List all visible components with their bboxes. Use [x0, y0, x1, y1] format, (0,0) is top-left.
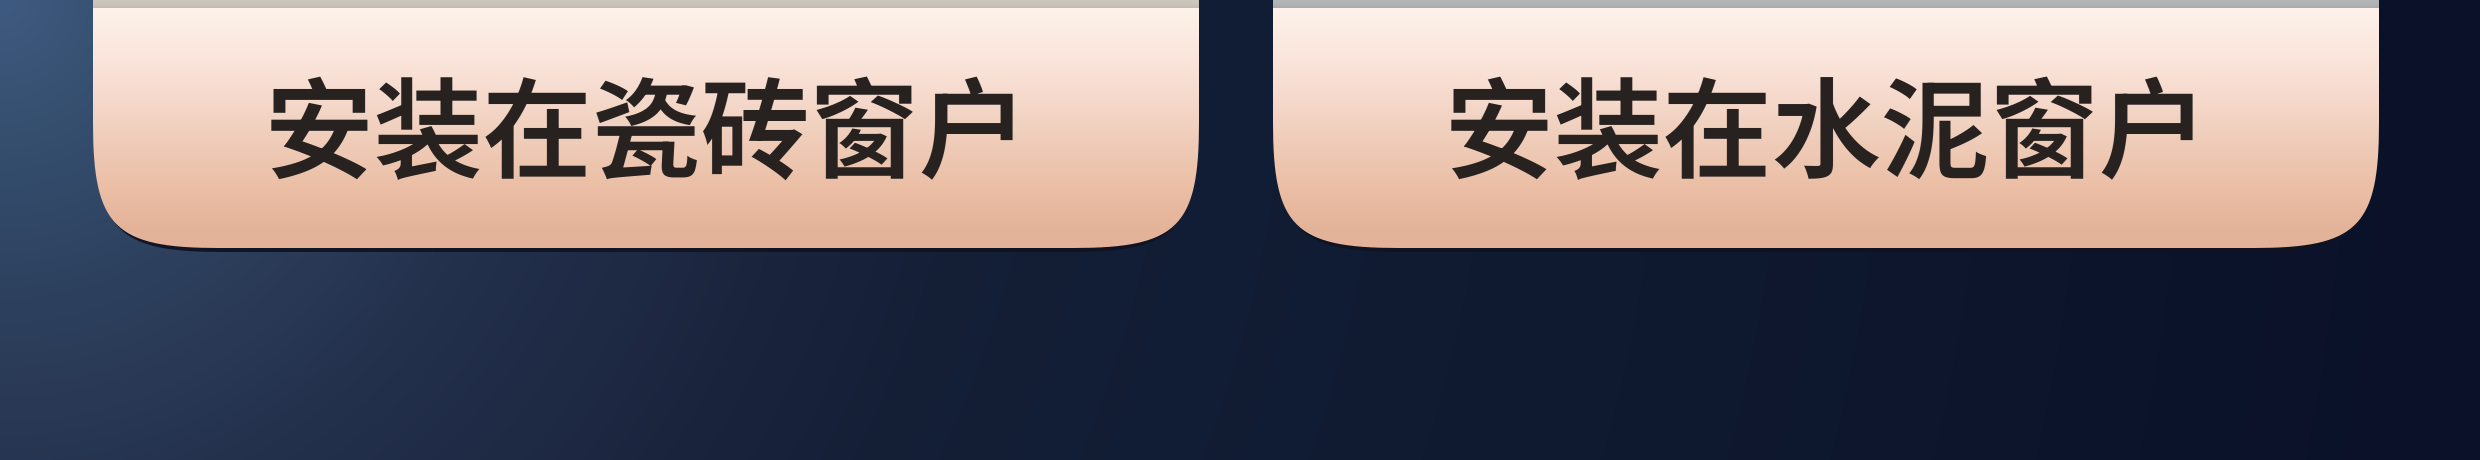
- staticText: 安装在瓷砖窗户: [264, 43, 1027, 201]
- button[interactable]: 安装在瓷砖窗户: [93, 0, 1199, 248]
- button[interactable]: 安装在水泥窗户: [1273, 0, 2379, 248]
- staticText: 安装在水泥窗户: [1444, 43, 2207, 201]
